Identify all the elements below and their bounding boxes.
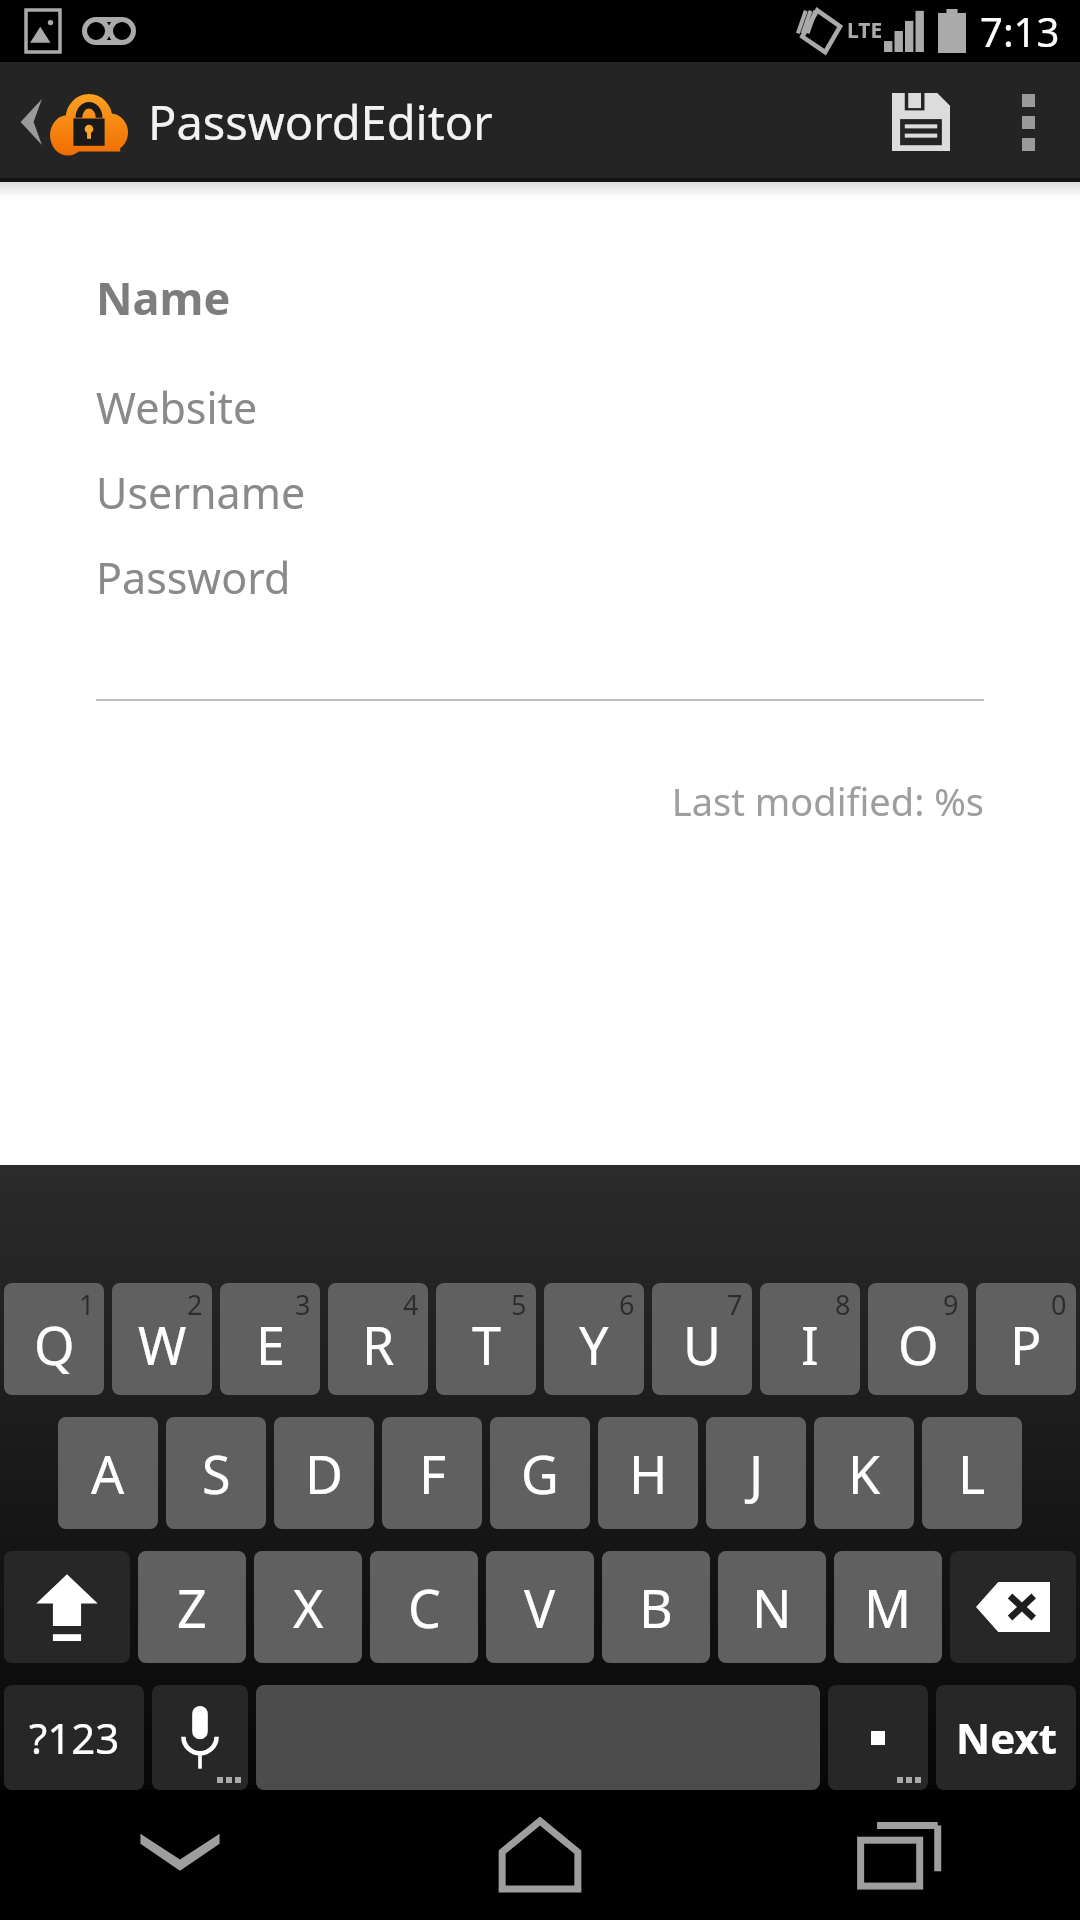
staticText: 1	[79, 1286, 95, 1323]
button[interactable]: V	[486, 1551, 594, 1663]
button[interactable]: A	[58, 1417, 158, 1529]
staticText: N	[752, 1572, 792, 1643]
button[interactable]: Name	[96, 267, 984, 328]
staticText: 4	[403, 1286, 419, 1323]
button[interactable]: 2	[112, 1283, 212, 1395]
staticText: L	[958, 1438, 986, 1509]
staticText: P	[1010, 1309, 1042, 1380]
button[interactable]: Password	[96, 548, 984, 607]
button[interactable]	[828, 1685, 928, 1790]
staticText: Y	[579, 1309, 609, 1380]
button[interactable]: C	[370, 1551, 478, 1663]
staticText: 6	[619, 1286, 635, 1323]
button[interactable]: 7	[652, 1283, 752, 1395]
button[interactable]: 8	[760, 1283, 860, 1395]
button[interactable]: Next	[936, 1685, 1076, 1790]
button[interactable]: Backspace	[950, 1551, 1076, 1663]
button[interactable]: ?123	[4, 1685, 144, 1790]
button[interactable]: Navigate up	[10, 62, 136, 182]
staticText: A	[91, 1438, 125, 1509]
staticText: T	[472, 1309, 501, 1380]
staticText: 8	[835, 1286, 851, 1323]
staticText: K	[848, 1438, 881, 1509]
staticText: Z	[177, 1572, 207, 1643]
staticText: S	[202, 1438, 231, 1509]
button[interactable]: X	[254, 1551, 362, 1663]
button[interactable]: Back	[0, 1790, 360, 1920]
staticText: F	[419, 1438, 446, 1509]
button[interactable]: Recent apps	[720, 1790, 1080, 1920]
staticText: E	[256, 1309, 285, 1380]
staticText: U	[683, 1309, 722, 1380]
staticText: M	[864, 1572, 912, 1643]
button[interactable]: D	[274, 1417, 374, 1529]
button[interactable]: Shift	[4, 1551, 130, 1663]
button[interactable]: Z	[138, 1551, 246, 1663]
staticText: 2	[187, 1286, 203, 1323]
button[interactable]: 9	[868, 1283, 968, 1395]
button[interactable]: K	[814, 1417, 914, 1529]
staticText: Last modified: %s	[96, 775, 984, 827]
button[interactable]: Home	[360, 1790, 720, 1920]
staticText: ?123	[29, 1709, 120, 1766]
button[interactable]: 3	[220, 1283, 320, 1395]
staticText: 0	[1051, 1286, 1067, 1323]
staticText: J	[749, 1438, 764, 1509]
button[interactable]: 5	[436, 1283, 536, 1395]
staticText: O	[898, 1309, 939, 1380]
staticText: B	[639, 1572, 673, 1643]
button[interactable]: M	[834, 1551, 942, 1663]
button[interactable]: J	[706, 1417, 806, 1529]
staticText: W	[138, 1309, 187, 1380]
button[interactable]: Save	[866, 62, 976, 182]
button[interactable]: N	[718, 1551, 826, 1663]
staticText: C	[408, 1572, 441, 1643]
staticText: LTE	[847, 16, 883, 45]
staticText: R	[362, 1309, 395, 1380]
staticText: Q	[34, 1309, 75, 1380]
button[interactable]: L	[922, 1417, 1022, 1529]
button[interactable]: Website	[96, 378, 984, 437]
button[interactable]: B	[602, 1551, 710, 1663]
button[interactable]: G	[490, 1417, 590, 1529]
button[interactable]: 6	[544, 1283, 644, 1395]
button[interactable]: More options	[976, 62, 1080, 182]
staticText: 3	[295, 1286, 311, 1323]
staticText: H	[629, 1438, 668, 1509]
staticText: 7:13	[980, 4, 1060, 58]
staticText: V	[524, 1572, 556, 1643]
staticText: 7	[727, 1286, 743, 1323]
button[interactable]: Username	[96, 463, 984, 522]
staticText: G	[521, 1438, 559, 1509]
staticText: I	[801, 1309, 819, 1380]
staticText: PasswordEditor	[148, 90, 493, 154]
button[interactable]: H	[598, 1417, 698, 1529]
staticText: X	[293, 1572, 324, 1643]
button[interactable]: 0	[976, 1283, 1076, 1395]
button[interactable]: 4	[328, 1283, 428, 1395]
staticText: 9	[943, 1286, 959, 1323]
button[interactable]: F	[382, 1417, 482, 1529]
staticText: 5	[511, 1286, 527, 1323]
button[interactable]: 1	[4, 1283, 104, 1395]
button[interactable]: S	[166, 1417, 266, 1529]
staticText: Next	[956, 1709, 1057, 1766]
button[interactable]: Voice input	[152, 1685, 248, 1790]
staticText: D	[305, 1438, 343, 1509]
